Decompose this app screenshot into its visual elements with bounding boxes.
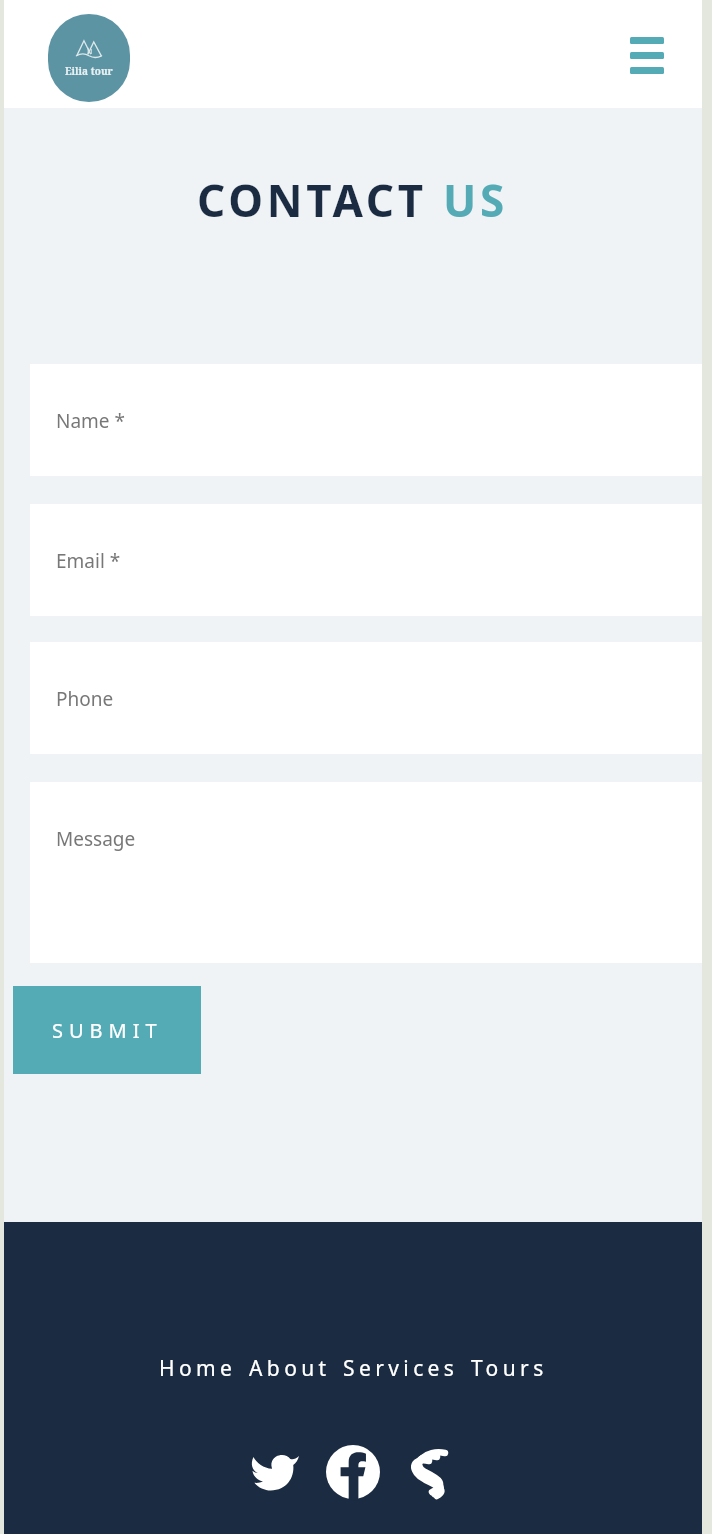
button[interactable]: Email * — [30, 504, 702, 616]
staticText: Name * — [56, 408, 125, 434]
button[interactable]: Eilia tour logo — [48, 14, 130, 102]
button[interactable]: Facebook — [325, 1444, 381, 1500]
button[interactable]: SUBMIT — [13, 986, 201, 1074]
button[interactable]: Home — [159, 1354, 237, 1383]
staticText: SUBMIT — [52, 1017, 163, 1044]
button[interactable]: Squarespace — [403, 1444, 459, 1500]
staticText: About — [249, 1354, 331, 1383]
button[interactable]: Twitter — [247, 1444, 303, 1500]
button[interactable]: Name * — [30, 364, 702, 476]
button[interactable]: Open navigation menu — [600, 8, 694, 102]
button[interactable]: Phone — [30, 642, 702, 754]
button[interactable]: Tours — [471, 1354, 548, 1383]
button[interactable]: Message — [30, 782, 702, 963]
staticText: Tours — [471, 1354, 548, 1383]
button[interactable]: Services — [343, 1354, 459, 1383]
staticText: Message — [56, 826, 136, 852]
staticText: Eilia tour — [65, 64, 113, 78]
staticText: US — [443, 170, 509, 230]
staticText: Home — [159, 1354, 237, 1383]
button[interactable]: About — [249, 1354, 331, 1383]
staticText: CONTACT — [197, 170, 443, 230]
staticText: Phone — [56, 686, 114, 712]
staticText: Services — [343, 1354, 459, 1383]
staticText: Email * — [56, 548, 121, 574]
